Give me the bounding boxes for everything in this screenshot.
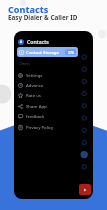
staticText: Contact Storage (26, 49, 59, 55)
staticText: 376 (68, 50, 74, 55)
staticText: Contacts (8, 3, 49, 15)
button[interactable]: Share App (18, 101, 70, 111)
staticText: Others (19, 61, 31, 66)
button[interactable]: Rate us (18, 90, 70, 100)
button[interactable]: Watch video (79, 184, 91, 195)
staticText: Contacts (27, 38, 49, 45)
button[interactable]: Contacts (18, 36, 68, 47)
staticText: Advance (26, 82, 44, 88)
staticText: Easy Dialer & Caller ID (8, 13, 78, 22)
staticText: Rate us (26, 92, 41, 98)
staticText: Settings (26, 72, 43, 78)
button[interactable]: Contact Storage (17, 47, 78, 57)
button[interactable]: Privacy Policy (18, 122, 70, 132)
button[interactable]: Advance (18, 80, 70, 90)
staticText: Share App (26, 103, 47, 109)
staticText: feedback (26, 113, 45, 119)
staticText: Privacy Policy (26, 124, 54, 130)
button[interactable]: feedback (18, 111, 70, 121)
button[interactable]: Settings (18, 70, 70, 80)
